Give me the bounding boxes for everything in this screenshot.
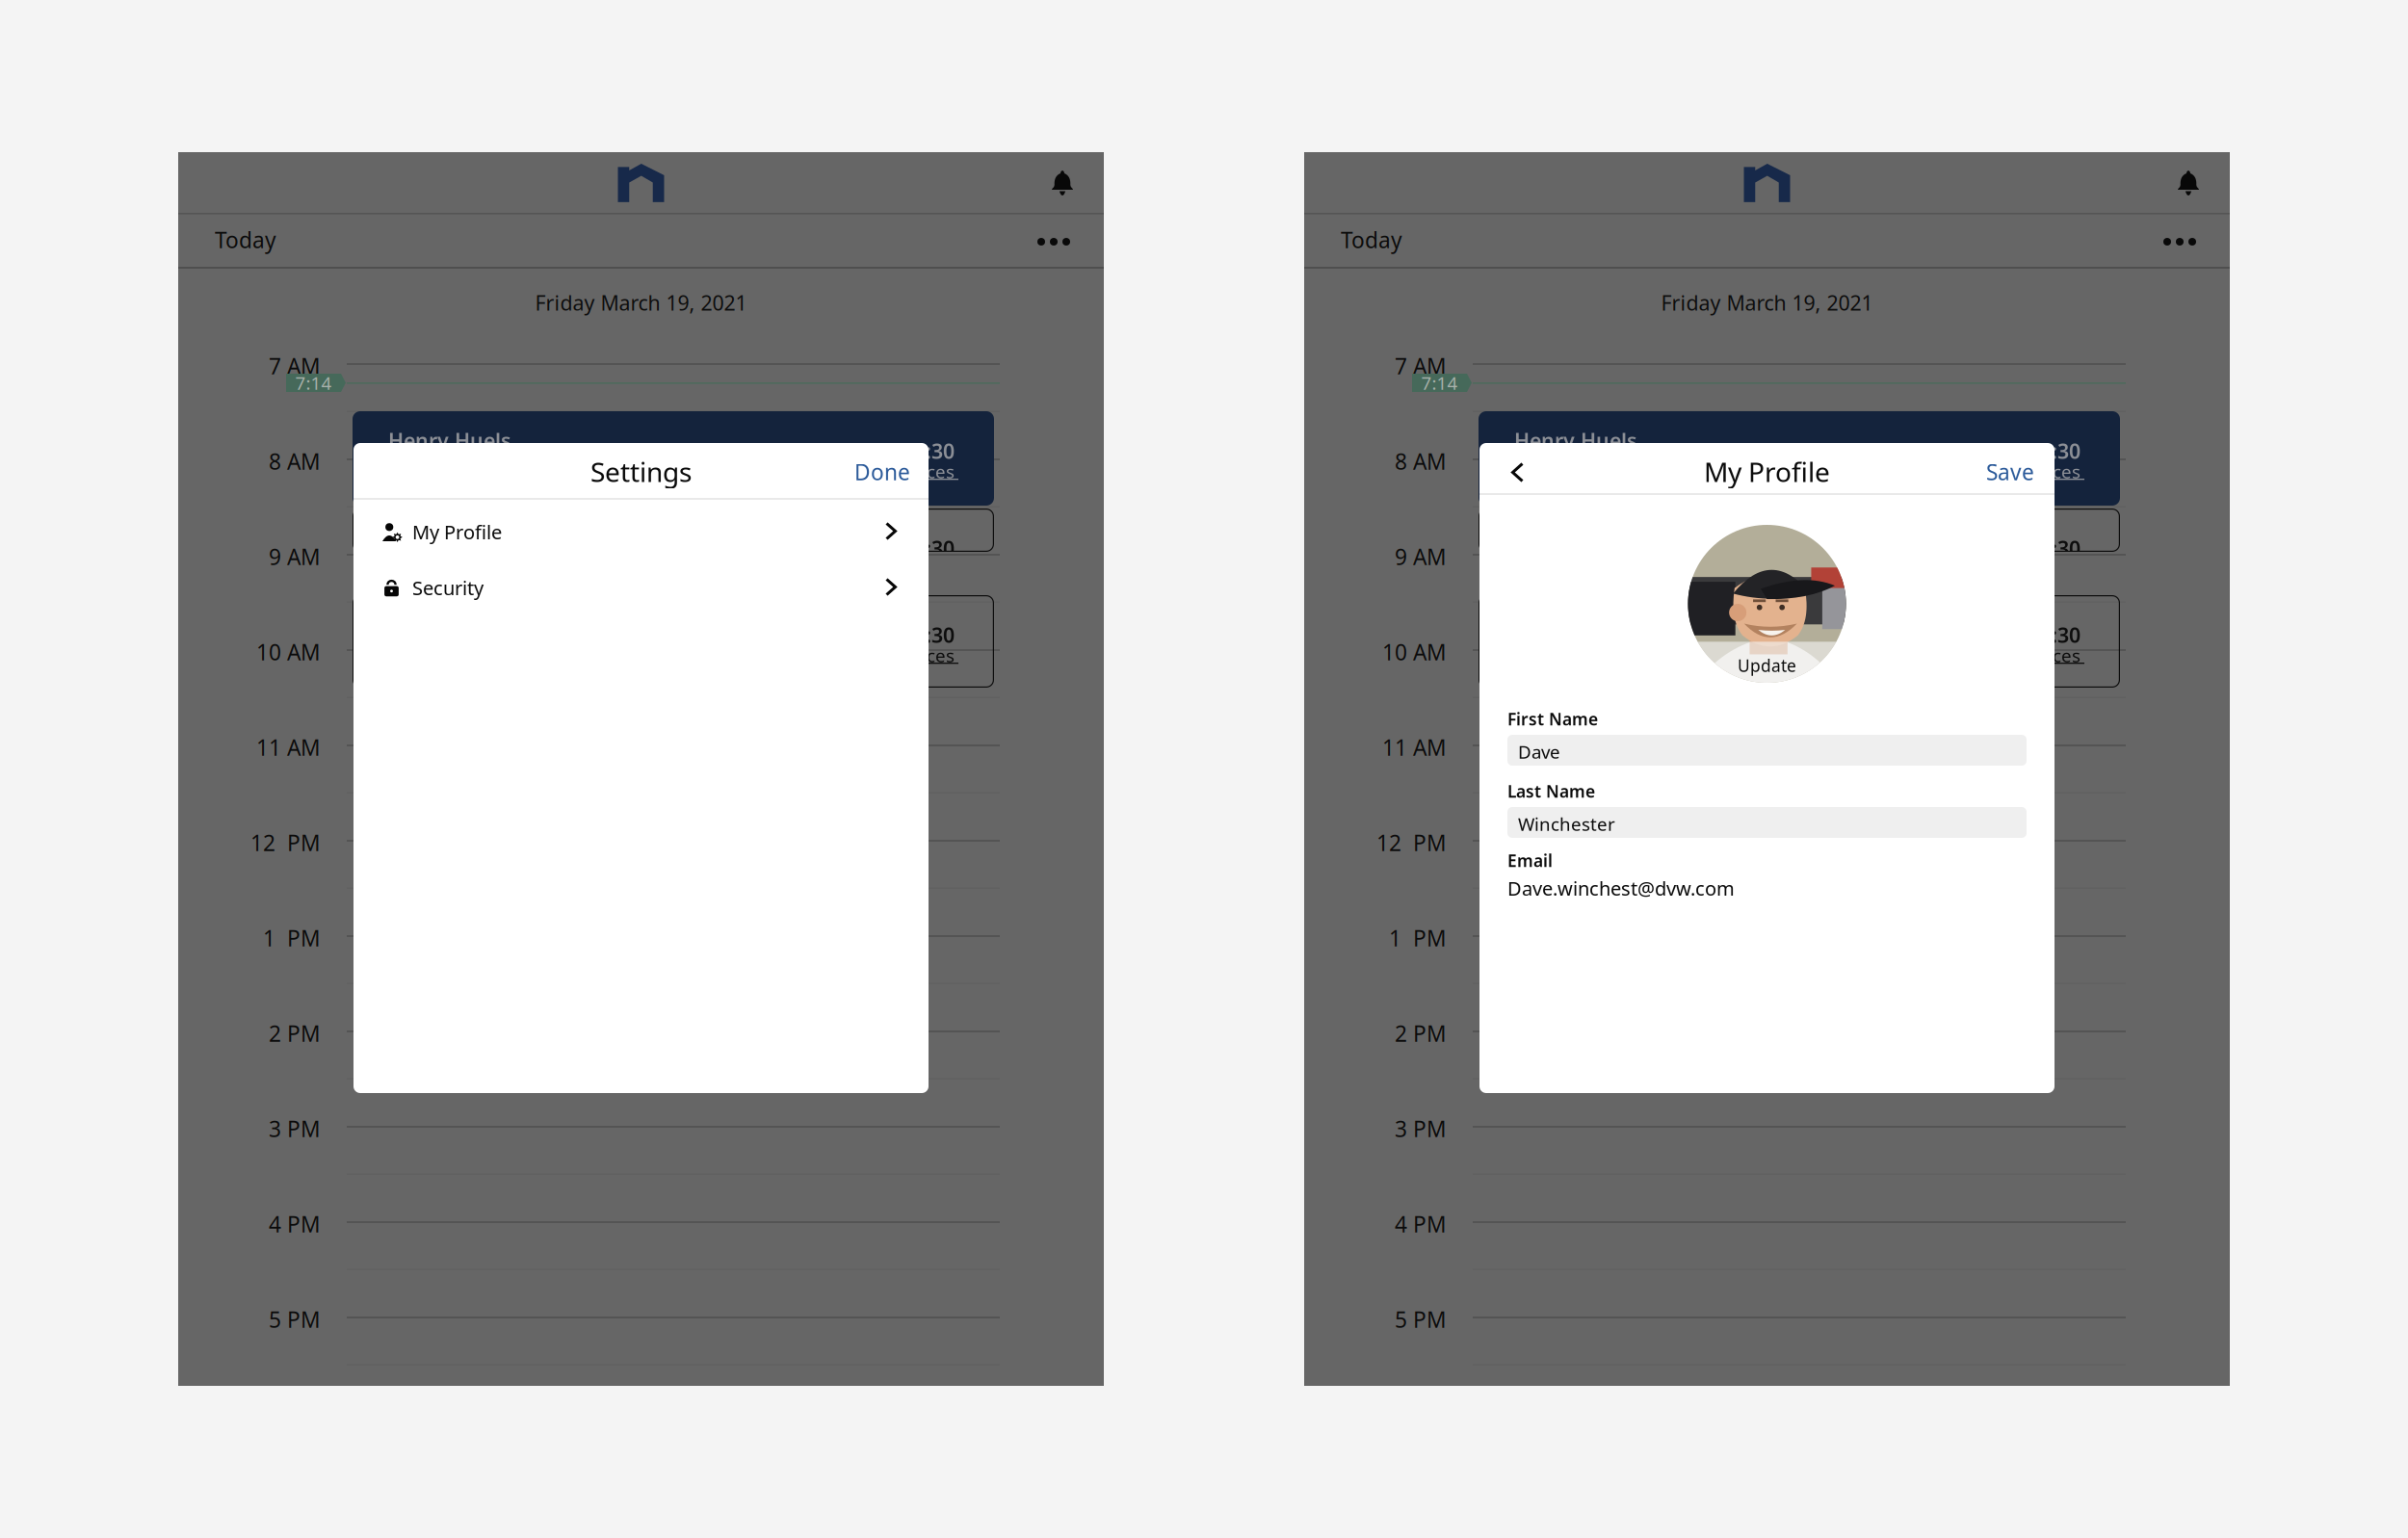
- button[interactable]: Update profile photo: [1688, 525, 1846, 683]
- staticText: 5 PM: [269, 1305, 321, 1334]
- staticText: 10 AM: [1382, 638, 1447, 667]
- staticText: 3 PM: [269, 1114, 321, 1143]
- staticText: Done: [854, 457, 910, 486]
- staticText: Mobile Services: [1949, 459, 2081, 483]
- staticText: 4 PM: [1395, 1210, 1447, 1239]
- staticText: 7:14: [1421, 371, 1458, 395]
- staticText: 8 AM: [1395, 447, 1447, 476]
- button[interactable]: Jennie Buckridge: [1479, 595, 2120, 688]
- staticText: 10 AM: [256, 638, 321, 667]
- staticText: Screen Cleaning: [817, 557, 955, 581]
- staticText: 7:30 - 8:30: [1981, 437, 2081, 464]
- staticText: Henry Huels: [1514, 427, 1637, 454]
- button[interactable]: Jennie Buckridge: [353, 595, 994, 688]
- button[interactable]: Gerardo Brakus: [353, 508, 994, 552]
- staticText: 1 PM: [263, 924, 321, 953]
- staticText: Friday March 19, 2021: [1661, 289, 1873, 316]
- button[interactable]: Notifications: [2167, 160, 2210, 206]
- staticText: Winchester: [1518, 812, 1615, 836]
- staticText: Friday March 19, 2021: [535, 289, 747, 316]
- staticText: 2 PM: [269, 1019, 321, 1048]
- staticText: Mobile Services: [1949, 643, 2081, 667]
- staticText: Email: [1507, 849, 1553, 872]
- button[interactable]: Henry Huels: [353, 411, 994, 506]
- staticText: Mobile Services: [823, 643, 955, 667]
- staticText: Dave: [1518, 740, 1560, 764]
- staticText: Save: [1986, 457, 2034, 486]
- button[interactable]: Done: [844, 449, 921, 495]
- staticText: 3 PM: [1395, 1114, 1447, 1143]
- staticText: My Profile: [1704, 454, 1830, 489]
- staticText: Last Name: [1507, 780, 1595, 802]
- staticText: 10:30 - 11:30: [1958, 621, 2081, 648]
- staticText: Security: [412, 575, 484, 601]
- staticText: 7:14: [295, 371, 332, 395]
- staticText: 7:30 - 8:30: [855, 437, 955, 464]
- button[interactable]: More options: [1024, 224, 1084, 259]
- staticText: 8:30 - 9:30: [855, 534, 955, 562]
- staticText: 12 PM: [1376, 828, 1447, 857]
- button[interactable]: Henry Huels: [1479, 411, 2120, 506]
- staticText: First Name: [1507, 708, 1598, 730]
- staticText: 8:30 - 9:30: [1981, 534, 2081, 562]
- staticText: 11 AM: [256, 733, 321, 762]
- staticText: 5 PM: [1395, 1305, 1447, 1334]
- staticText: 9 AM: [1395, 542, 1447, 571]
- staticText: Today: [215, 225, 276, 254]
- staticText: 2 PM: [1395, 1019, 1447, 1048]
- staticText: 7 AM: [1395, 352, 1447, 381]
- staticText: 11 AM: [1382, 733, 1447, 762]
- button[interactable]: Notifications: [1041, 160, 1084, 206]
- staticText: 7 AM: [269, 352, 321, 381]
- button[interactable]: Back: [1501, 454, 1534, 491]
- staticText: Dave.winchest@dvw.com: [1507, 875, 1735, 901]
- staticText: Settings: [590, 454, 692, 489]
- staticText: 4 PM: [269, 1210, 321, 1239]
- button[interactable]: More options: [2150, 224, 2210, 259]
- staticText: Today: [1341, 225, 1402, 254]
- staticText: Gerardo Brakus: [388, 524, 544, 551]
- staticText: 10:30 - 11:30: [832, 621, 955, 648]
- staticText: Mobile Services: [823, 459, 955, 483]
- button[interactable]: My Profile: [353, 514, 929, 559]
- button[interactable]: Save: [1976, 449, 2045, 495]
- button[interactable]: Gerardo Brakus: [1479, 508, 2120, 552]
- staticText: 9 AM: [269, 542, 321, 571]
- staticText: 8 AM: [269, 447, 321, 476]
- button[interactable]: Security: [353, 570, 929, 614]
- staticText: Henry Huels: [388, 427, 511, 454]
- staticText: Update: [1738, 654, 1796, 677]
- staticText: Screen Cleaning: [1943, 557, 2081, 581]
- staticText: 12 PM: [250, 828, 321, 857]
- staticText: My Profile: [412, 519, 502, 545]
- staticText: 1 PM: [1389, 924, 1447, 953]
